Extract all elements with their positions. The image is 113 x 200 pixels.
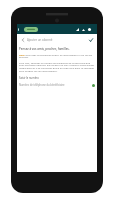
button[interactable]: Retour (19, 35, 26, 45)
button[interactable]: Ajouter (92, 84, 95, 87)
staticText: Pour cela, saisissez le numéro de téléph… (19, 61, 95, 73)
button[interactable]: Valider (87, 35, 95, 45)
staticText: NEW Vous avez la possibilité d'offrir un… (19, 53, 95, 59)
staticText: Numéro de téléphone du bénéficiaire (19, 83, 65, 87)
staticText: Ajouter un abonné (27, 38, 53, 42)
staticText: Pensez à vos amis, proches, familles. (19, 47, 70, 51)
staticText: Saisir le numéro (19, 76, 39, 80)
